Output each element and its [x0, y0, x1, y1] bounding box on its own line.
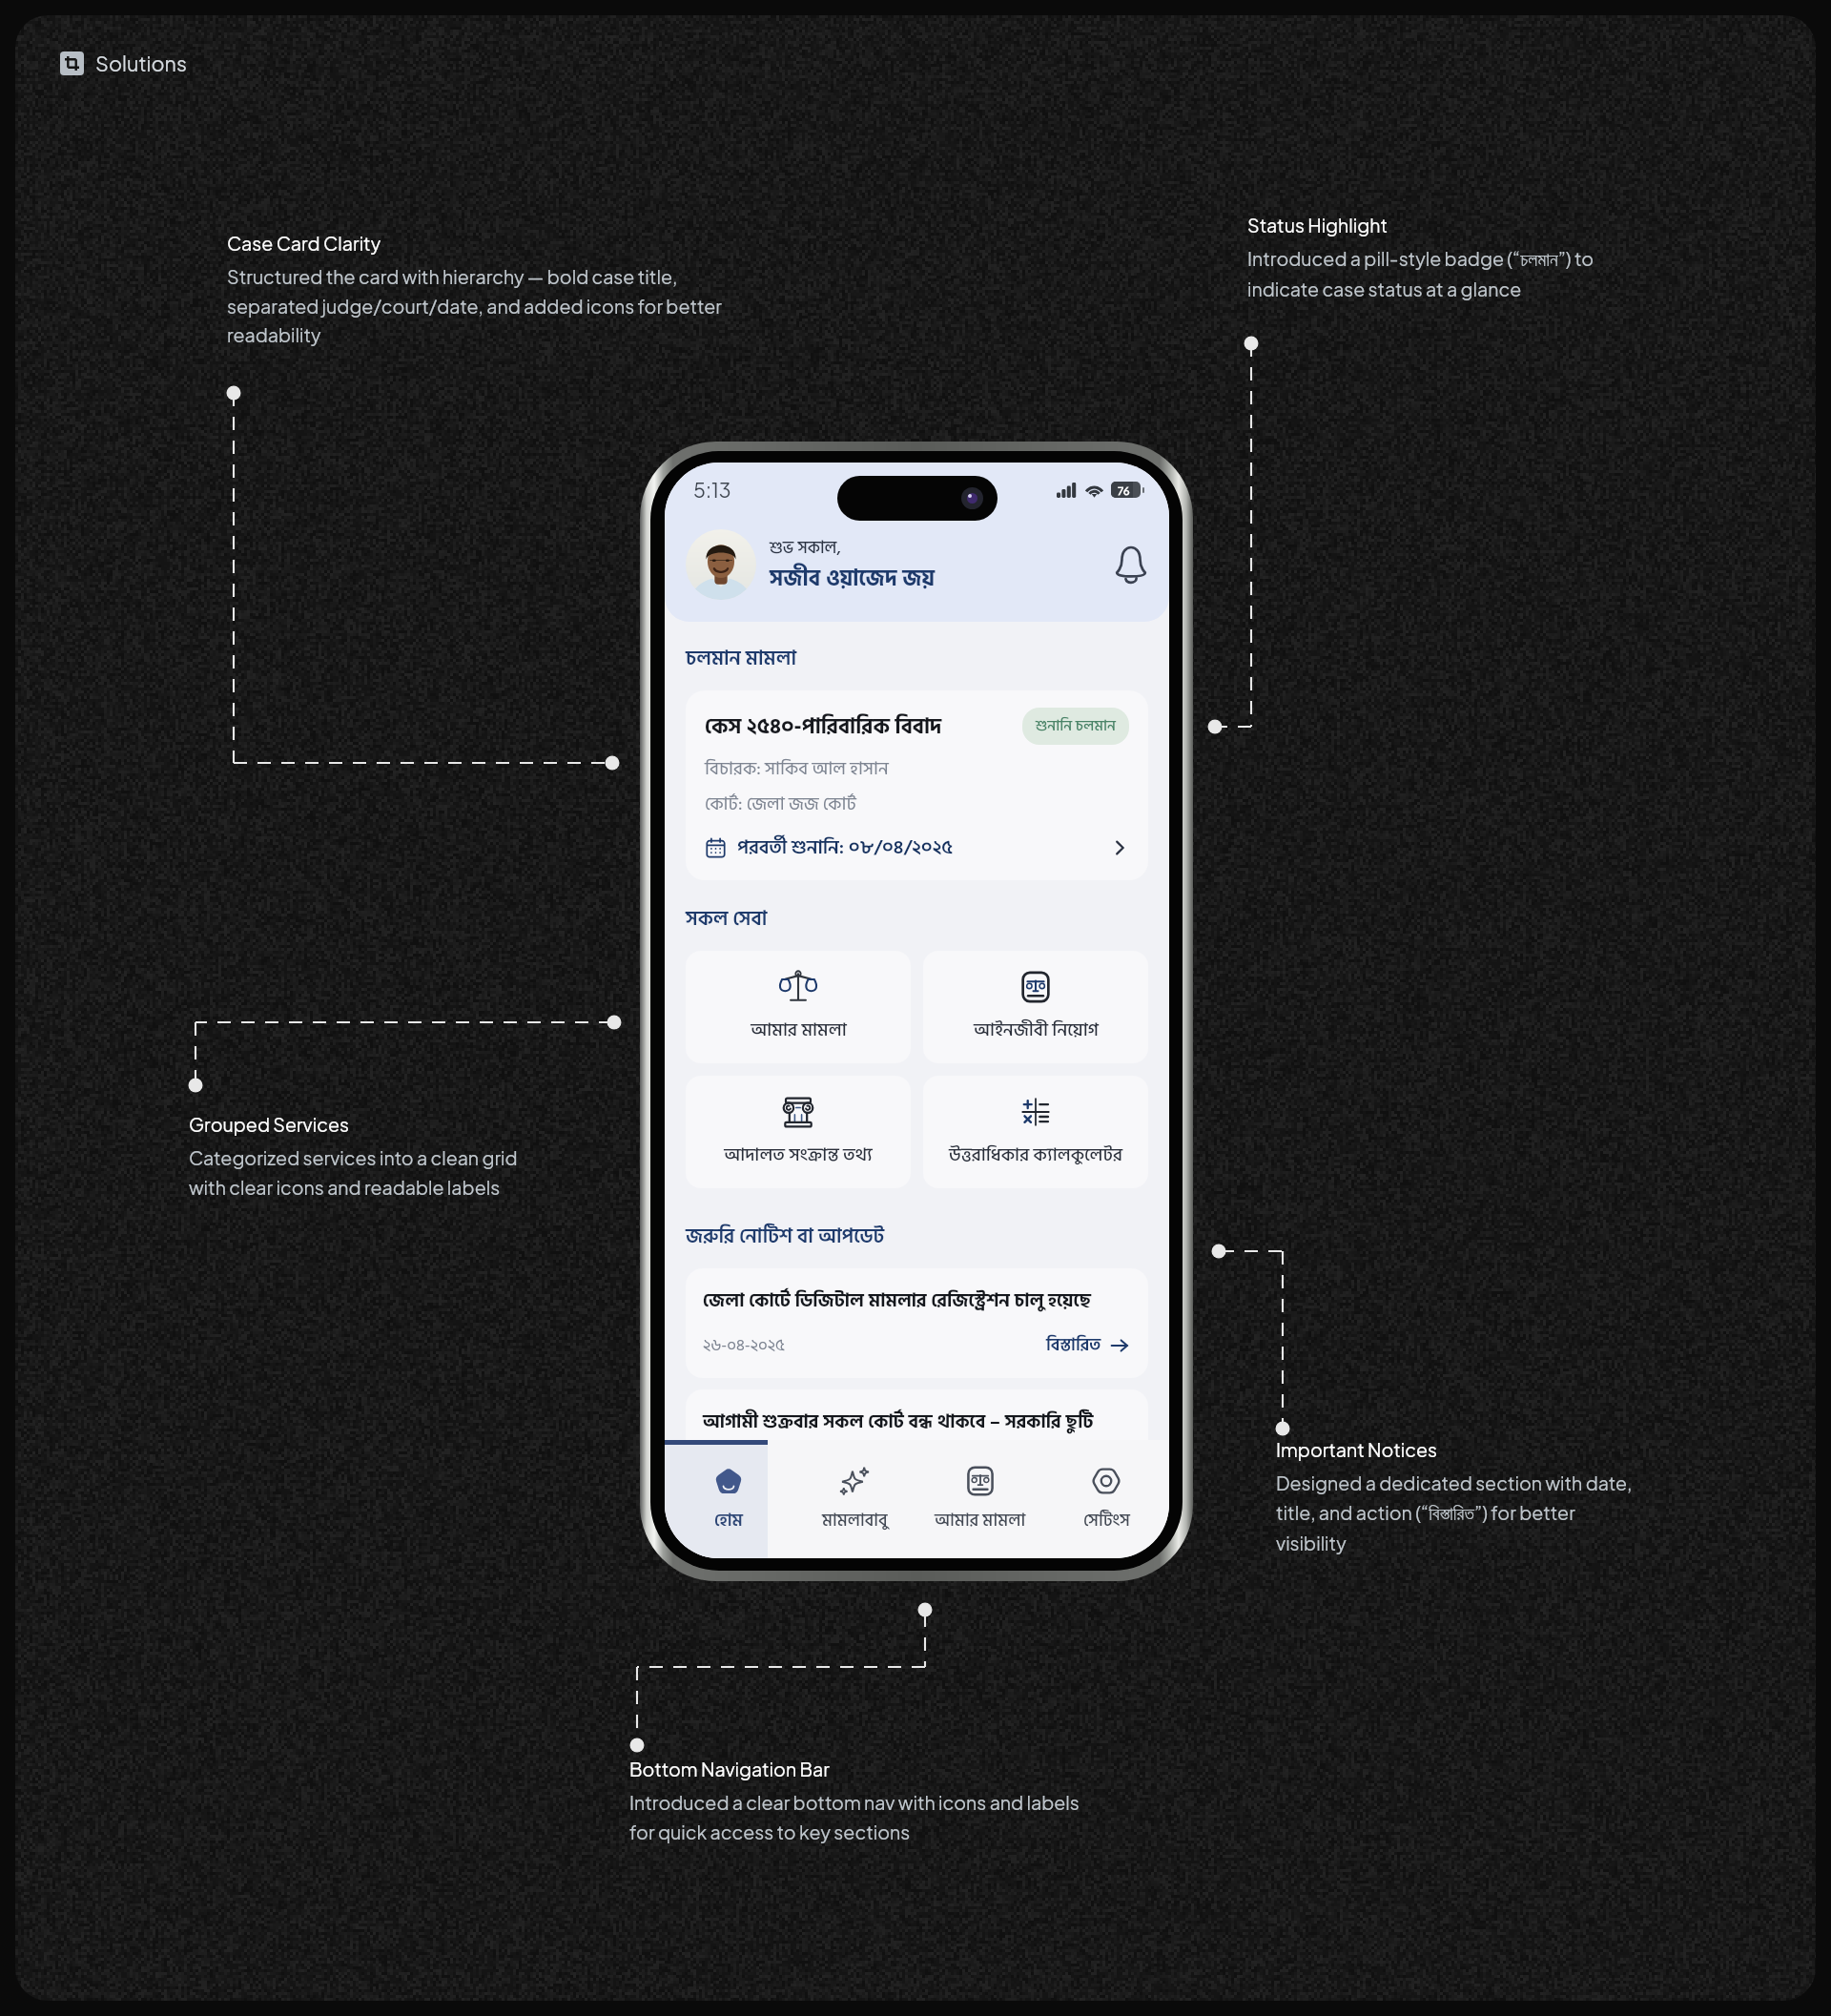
staticText: Introduced a pill-style badge (“চলমান”) … — [1247, 247, 1594, 300]
staticText: ২৫-০৪-২০২৫ — [703, 1453, 784, 1479]
staticText: আমার মামলা — [935, 1507, 1026, 1534]
staticText: হোম — [714, 1507, 743, 1534]
button[interactable]: আইনজীবী নিয়োগ — [923, 951, 1148, 1063]
staticText: কোর্ট: জেলা জজ কোর্ট — [705, 790, 856, 819]
button[interactable]: সেটিংস — [1043, 1440, 1169, 1558]
staticText: আদালত সংক্রান্ত তথ্য — [724, 1141, 873, 1170]
staticText: Solutions — [95, 51, 187, 76]
staticText: জরুরি নোটিশ বা আপডেট — [686, 1221, 885, 1253]
staticText: Structured the card with hierarchy — bol… — [227, 265, 722, 346]
staticText: বিস্তারিত — [1046, 1452, 1101, 1480]
staticText: আইনজীবী নিয়োগ — [974, 1016, 1099, 1045]
staticText: কেস ২৫৪০-পারিবারিক বিবাদ — [705, 710, 1022, 744]
staticText: 76 — [1118, 483, 1130, 497]
staticText: মামলাবাবু — [822, 1507, 888, 1534]
button[interactable]: Solutions — [60, 51, 187, 76]
staticText: ২৬-০৪-২০২৫ — [703, 1332, 785, 1358]
button[interactable]: কেস ২৫৪০-পারিবারিক বিবাদ — [686, 690, 1148, 880]
staticText: Grouped Services — [189, 1113, 350, 1137]
button[interactable]: উত্তরাধিকার ক্যালকুলেটর — [923, 1076, 1148, 1188]
staticText: শুনানি চলমান — [1036, 714, 1116, 738]
staticText: সেটিংস — [1083, 1507, 1130, 1534]
staticText: বিচারক: সাকিব আল হাসান — [705, 754, 889, 784]
staticText: উত্তরাধিকার ক্যালকুলেটর — [949, 1141, 1122, 1170]
button[interactable]: আমার মামলা — [686, 951, 911, 1063]
staticText: Status Highlight — [1247, 214, 1389, 237]
staticText: চলমান মামলা — [686, 643, 796, 675]
staticText: বিস্তারিত — [1046, 1331, 1101, 1359]
staticText: আগামী শুক্রবার সকল কোর্ট বন্ধ থাকবে – সর… — [703, 1407, 1094, 1437]
button[interactable]: আমার মামলা — [917, 1440, 1043, 1558]
staticText: Designed a dedicated section with date, … — [1276, 1471, 1633, 1554]
button[interactable]: জেলা কোর্টে ডিজিটাল মামলার রেজিস্ট্রেশন … — [686, 1268, 1148, 1378]
button[interactable]: আদালত সংক্রান্ত তথ্য — [686, 1076, 911, 1188]
staticText: সজীব ওয়াজেদ জয় — [770, 561, 936, 596]
staticText: সকল সেবা — [686, 903, 768, 936]
button[interactable]: বিস্তারিত — [1044, 1450, 1131, 1482]
staticText: Introduced a clear bottom nav with icons… — [629, 1791, 1080, 1843]
button[interactable]: হোম — [665, 1440, 792, 1558]
staticText: Case Card Clarity — [227, 232, 381, 256]
staticText: জেলা কোর্টে ডিজিটাল মামলার রেজিস্ট্রেশন … — [703, 1286, 1092, 1316]
staticText: পরবর্তী শুনানি: ০৮/০৪/২০২৫ — [737, 833, 1110, 863]
staticText: Bottom Navigation Bar — [629, 1758, 830, 1781]
staticText: আমার মামলা — [751, 1016, 847, 1045]
button[interactable]: বিস্তারিত — [1044, 1329, 1131, 1361]
staticText: শুভ সকাল, — [770, 534, 841, 561]
button[interactable]: Notifications — [1108, 542, 1154, 587]
staticText: Categorized services into a clean grid w… — [189, 1146, 518, 1199]
button[interactable]: মামলাবাবু — [792, 1440, 917, 1558]
button[interactable]: আগামী শুক্রবার সকল কোর্ট বন্ধ থাকবে – সর… — [686, 1389, 1148, 1499]
staticText: 5:13 — [693, 477, 731, 502]
staticText: Important Notices — [1276, 1438, 1438, 1462]
